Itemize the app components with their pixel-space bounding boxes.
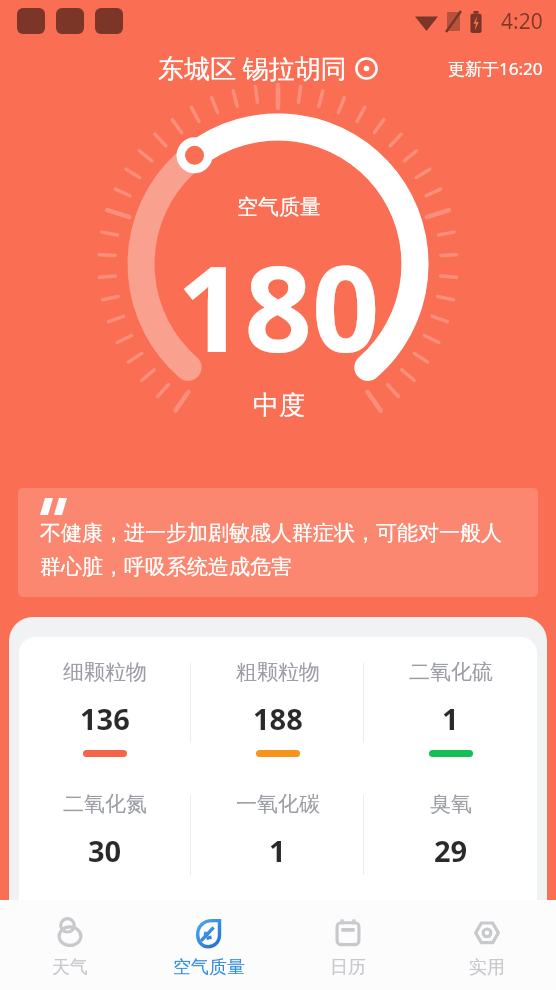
staticText: 4:20 (501, 7, 543, 36)
staticText: 中度 (253, 389, 305, 422)
staticText: 不健康，进一步加剧敏感人群症状，可能对一般人群心脏，呼吸系统造成危害 (40, 520, 522, 581)
staticText: 更新于16:20 (448, 57, 543, 80)
button[interactable]: 一氧化碳 (191, 769, 364, 901)
staticText: 30 (88, 831, 122, 870)
staticText: 二氧化氮 (63, 791, 147, 817)
button[interactable]: 二氧化氮 (19, 769, 191, 901)
staticText: 1 (269, 831, 286, 870)
button[interactable]: Calendar (278, 900, 417, 990)
button[interactable]: 细颗粒物 (19, 637, 191, 769)
staticText: 188 (253, 699, 303, 738)
staticText: 29 (434, 831, 468, 870)
staticText: 实用 (469, 956, 505, 979)
staticText: 东城区 锡拉胡同 (158, 50, 347, 86)
button[interactable]: 臭氧 (364, 769, 537, 901)
staticText: 天气 (52, 956, 88, 979)
button[interactable]: Weather (0, 900, 139, 990)
staticText: 136 (80, 699, 130, 738)
staticText: 细颗粒物 (63, 659, 147, 685)
button[interactable]: 不健康，进一步加剧敏感人群症状，可能对一般人群心脏，呼吸系统造成危害 (18, 488, 538, 597)
staticText: 日历 (330, 956, 366, 979)
button[interactable]: Utilities (417, 900, 556, 990)
staticText: 臭氧 (430, 791, 472, 817)
staticText: 空气质量 (237, 194, 321, 220)
button[interactable]: 粗颗粒物 (191, 637, 364, 769)
staticText: 1 (442, 699, 459, 738)
staticText: 二氧化硫 (409, 659, 493, 685)
button[interactable]: 二氧化硫 (364, 637, 537, 769)
staticText: 一氧化碳 (236, 791, 320, 817)
staticText: 粗颗粒物 (236, 659, 320, 685)
button[interactable]: Air quality (139, 900, 278, 990)
staticText: 空气质量 (173, 956, 245, 979)
staticText: 180 (177, 226, 380, 387)
